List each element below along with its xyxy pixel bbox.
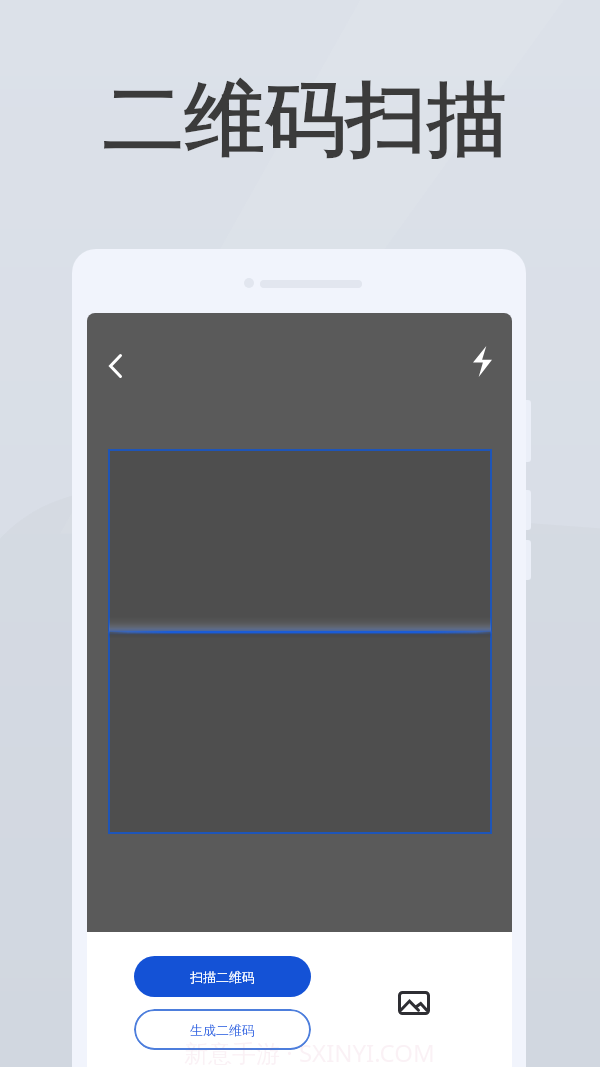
button[interactable]: Toggle flash (459, 338, 505, 384)
button[interactable]: Back (92, 343, 138, 389)
staticText: 扫描二维码 (190, 969, 255, 985)
staticText: 生成二维码 (190, 1022, 255, 1038)
staticText: 二维码扫描 (103, 69, 508, 171)
button[interactable]: Pick image from gallery (390, 979, 437, 1026)
button[interactable]: 扫描二维码 (134, 956, 311, 997)
staticText: 新意手游 · SXINYI.COM (184, 1036, 435, 1067)
staticText: 二维码扫描 (103, 69, 508, 171)
button[interactable]: 生成二维码 (134, 1009, 311, 1050)
